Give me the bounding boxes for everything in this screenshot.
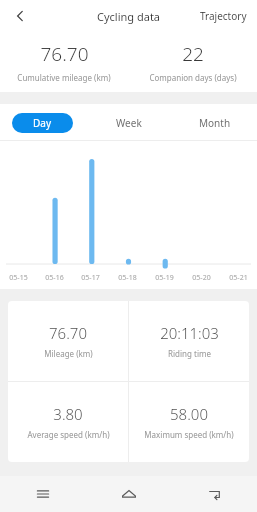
- button[interactable]: 20:11:03: [129, 301, 249, 381]
- staticText: 3.80: [53, 404, 83, 424]
- staticText: Maximum speed (km/h): [144, 429, 234, 440]
- button[interactable]: Back: [194, 476, 234, 512]
- staticText: 05-15: [9, 273, 28, 283]
- staticText: 05-18: [118, 273, 137, 283]
- staticText: 58.00: [170, 404, 208, 424]
- button[interactable]: Home: [109, 476, 149, 512]
- button[interactable]: 3.80: [8, 382, 128, 462]
- button[interactable]: Month: [184, 113, 245, 133]
- staticText: Average speed (km/h): [27, 429, 110, 440]
- staticText: Mileage (km): [44, 348, 93, 359]
- staticText: 05-19: [155, 273, 174, 283]
- staticText: Day: [33, 116, 52, 130]
- staticText: 05-21: [229, 273, 248, 283]
- button[interactable]: Recent apps: [23, 476, 63, 512]
- button[interactable]: Back: [8, 4, 32, 28]
- staticText: Month: [199, 116, 231, 130]
- staticText: Cycling data: [97, 9, 161, 24]
- staticText: 05-16: [45, 273, 64, 283]
- staticText: 05-17: [81, 273, 100, 283]
- staticText: Companion days (days): [149, 72, 237, 83]
- staticText: 20:11:03: [160, 323, 219, 343]
- staticText: 05-20: [192, 273, 211, 283]
- staticText: Riding time: [168, 348, 211, 359]
- button[interactable]: Day: [12, 113, 73, 133]
- button[interactable]: Week: [98, 113, 159, 133]
- staticText: 76.70: [40, 41, 89, 67]
- button[interactable]: 76.70: [8, 301, 128, 381]
- staticText: Cumulative mileage (km): [17, 72, 111, 83]
- button[interactable]: Trajectory: [190, 3, 257, 29]
- staticText: 22: [182, 41, 204, 67]
- staticText: 76.70: [49, 323, 87, 343]
- button[interactable]: 58.00: [129, 382, 249, 462]
- staticText: Trajectory: [200, 9, 247, 23]
- staticText: Week: [116, 116, 142, 130]
